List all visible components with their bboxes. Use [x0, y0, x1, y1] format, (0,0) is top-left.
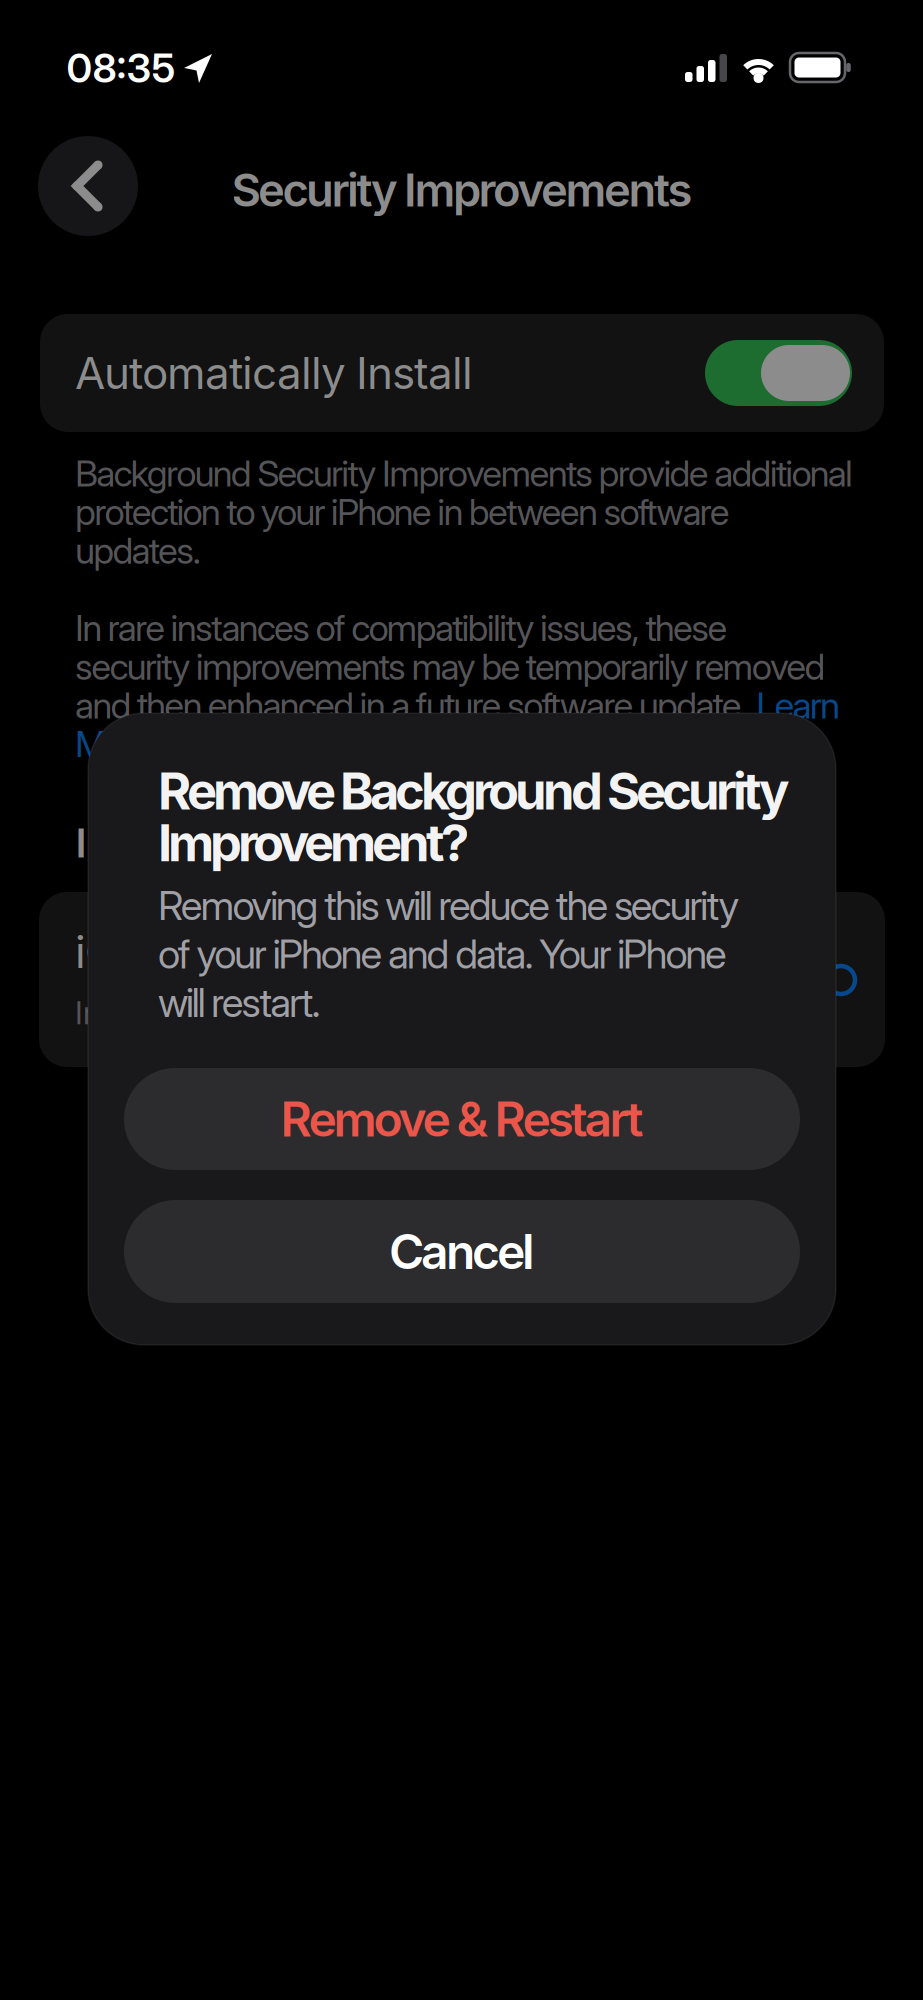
staticText: Automatically Install: [75, 347, 473, 399]
staticText: iOS Security Response: [75, 926, 530, 978]
staticText: Removing this will reduce the security: [158, 882, 740, 929]
staticText: Learn: [756, 684, 840, 727]
staticText: Background Security Improvements provide…: [75, 452, 853, 495]
staticText: protection to your iPhone in between sof…: [75, 491, 730, 533]
staticText: Remove & Restart: [280, 1091, 643, 1147]
staticText: More: [75, 723, 153, 765]
staticText: Installed: [76, 819, 230, 867]
button[interactable]: Learn: [756, 684, 840, 727]
button[interactable]: Automatically Install: [705, 340, 852, 406]
button[interactable]: More: [75, 723, 153, 765]
button[interactable]: Back: [38, 136, 138, 236]
staticText: Improvement?: [158, 813, 469, 873]
staticText: updates.: [75, 529, 201, 572]
staticText: will restart.: [158, 979, 321, 1026]
staticText: and then enhanced in a future software u…: [75, 684, 756, 727]
staticText: Cancel: [389, 1223, 535, 1280]
button[interactable]: Remove & Restart: [124, 1068, 800, 1170]
staticText: Security Improvements: [231, 163, 692, 217]
staticText: Remove Background Security: [158, 761, 790, 821]
staticText: security improvements may be temporarily…: [75, 645, 825, 688]
staticText: 08:35: [66, 44, 175, 92]
button[interactable]: Info: [827, 966, 855, 994]
staticText: Installed: [75, 995, 192, 1031]
button[interactable]: Cancel: [124, 1200, 800, 1303]
staticText: of your iPhone and data. Your iPhone: [158, 930, 727, 978]
staticText: In rare instances of compatibility issue…: [75, 607, 727, 649]
